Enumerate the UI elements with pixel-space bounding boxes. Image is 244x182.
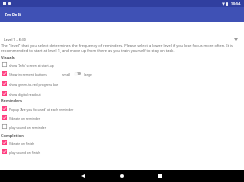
staticText: play sound on reminder: [9, 125, 47, 129]
staticText: small: [62, 72, 71, 76]
other: Select level: [234, 38, 238, 41]
staticText: large: [84, 72, 92, 76]
staticText: Show increment buttons: [9, 72, 47, 76]
staticText: Visuals: [1, 55, 15, 60]
staticText: 10:54: [231, 1, 241, 6]
button[interactable]: Back: [63, 170, 103, 182]
staticText: The "level" that you select determines t…: [1, 43, 242, 53]
staticText: I'm On It: [5, 12, 21, 17]
button[interactable]: Vibrate on reminder: [0, 113, 244, 122]
button[interactable]: Home: [102, 170, 142, 182]
button[interactable]: show green-to-red progress bar: [0, 79, 244, 88]
button[interactable]: play sound on finish: [0, 147, 244, 156]
staticText: Completion: [1, 133, 24, 138]
staticText: Level 1 – 8:30: [4, 37, 26, 42]
staticText: Vibrate on finish: [9, 141, 35, 145]
button[interactable]: show digital readout: [0, 89, 244, 98]
button[interactable]: Recents: [140, 170, 180, 182]
button[interactable]: show 'Info' screen at start-up: [0, 60, 244, 69]
staticText: Reminders: [1, 98, 23, 103]
button[interactable]: Vibrate on finish: [0, 138, 244, 147]
button[interactable]: play sound on reminder: [0, 122, 244, 131]
staticText: show 'Info' screen at start-up: [9, 63, 54, 67]
button[interactable]: Level 1 – 8:30: [0, 36, 244, 43]
staticText: play sound on finish: [9, 150, 41, 154]
staticText: Popup 'Are you focused' at each reminder: [9, 107, 74, 111]
button[interactable]: Show increment buttons: [0, 69, 244, 78]
staticText: show green-to-red progress bar: [9, 82, 59, 86]
button[interactable]: small: [62, 71, 244, 76]
staticText: show digital readout: [9, 92, 41, 96]
button[interactable]: Popup 'Are you focused' at each reminder: [0, 104, 244, 113]
staticText: Vibrate on reminder: [9, 116, 41, 120]
